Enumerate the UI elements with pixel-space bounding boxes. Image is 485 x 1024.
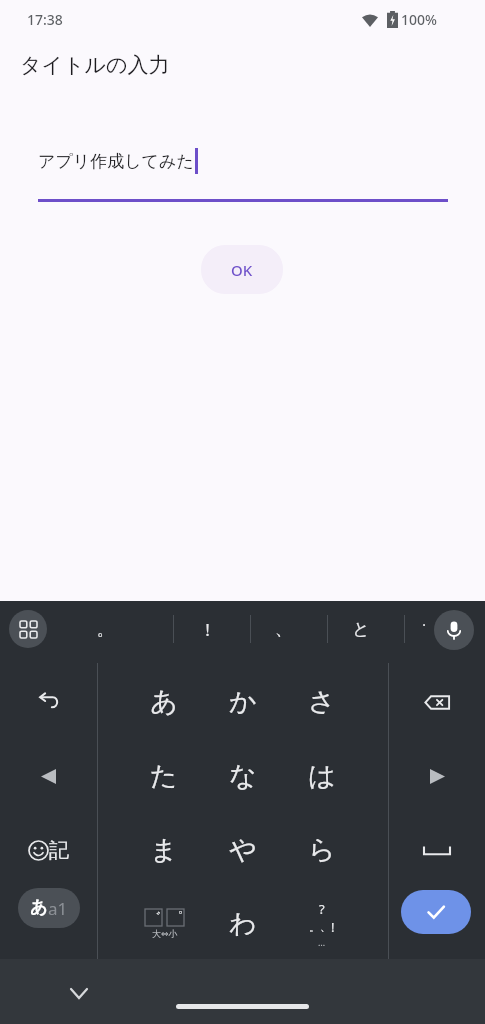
staticText: や [229, 833, 257, 867]
staticText: た [150, 759, 178, 793]
button[interactable]: か [206, 665, 280, 739]
button[interactable]: Hide keyboard [57, 971, 101, 1015]
staticText: ま [150, 833, 178, 867]
button[interactable]: と [339, 605, 383, 653]
button[interactable]: ˙ [402, 605, 446, 653]
button[interactable]: Move cursor left [11, 739, 85, 813]
button[interactable]: 、 [261, 605, 305, 653]
button[interactable]: Keyboard apps [9, 610, 47, 648]
staticText: ゜ [168, 909, 184, 926]
staticText: 。 [309, 920, 320, 934]
staticText: ? [319, 900, 325, 918]
staticText: アプリ作成してみた [38, 151, 194, 172]
button[interactable]: あ [127, 665, 201, 739]
staticText: ! [205, 618, 210, 641]
button[interactable]: ら [285, 813, 359, 887]
button[interactable]: Undo [11, 665, 85, 739]
staticText: 大⇔小 [152, 928, 178, 939]
button[interactable]: アプリ作成してみた [38, 148, 448, 200]
staticText: OK [231, 260, 253, 280]
staticText: ˙ [422, 618, 426, 641]
staticText: ゛ [146, 909, 162, 926]
button[interactable]: Backspace [400, 665, 474, 739]
button[interactable]: や [206, 813, 280, 887]
button[interactable]: あ [18, 888, 80, 928]
button[interactable]: ま [127, 813, 201, 887]
button[interactable]: た [127, 739, 201, 813]
button[interactable]: Enter [401, 890, 471, 934]
button[interactable]: Move cursor right [400, 739, 474, 813]
button[interactable]: わ [206, 887, 280, 961]
staticText: な [229, 759, 257, 793]
staticText: 100% [401, 10, 437, 29]
staticText: あ [150, 685, 178, 719]
button[interactable]: さ [285, 665, 359, 739]
staticText: … [318, 936, 326, 948]
button[interactable]: 。 [83, 605, 127, 653]
staticText: ら [308, 833, 336, 867]
staticText: か [229, 685, 257, 719]
staticText: ! [331, 918, 335, 936]
staticText: a1 [48, 897, 68, 920]
staticText: 、 [320, 920, 331, 934]
button[interactable]: ! [185, 605, 229, 653]
button[interactable]: Space [400, 813, 474, 887]
staticText: さ [308, 685, 336, 719]
button[interactable]: ? [285, 887, 359, 961]
staticText: は [308, 759, 336, 793]
staticText: 17:38 [27, 10, 63, 29]
staticText: 。 [97, 619, 114, 640]
button[interactable]: ゛ [127, 887, 201, 961]
button[interactable]: は [285, 739, 359, 813]
staticText: 記 [49, 838, 69, 863]
button[interactable]: な [206, 739, 280, 813]
staticText: 、 [275, 619, 292, 640]
staticText: わ [229, 907, 257, 941]
staticText: と [352, 619, 370, 640]
button[interactable]: OK [201, 245, 283, 294]
button[interactable]: Voice input [434, 610, 474, 650]
staticText: タイトルの入力 [20, 52, 170, 78]
button[interactable]: 記 [11, 813, 85, 887]
staticText: あ [30, 897, 48, 918]
